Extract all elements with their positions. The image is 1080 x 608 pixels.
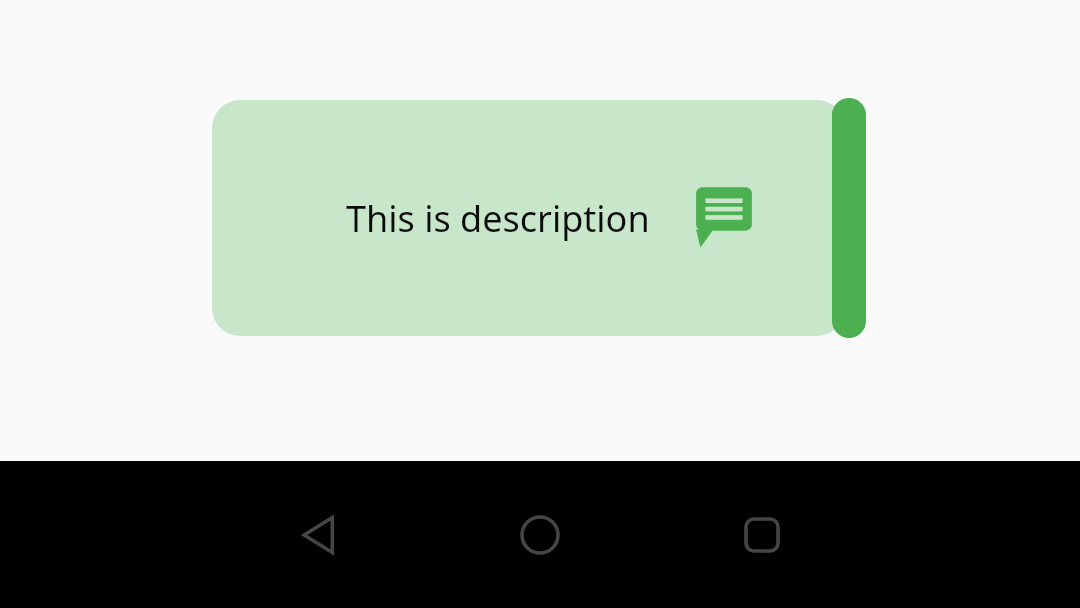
staticText: This is description bbox=[346, 194, 650, 243]
button[interactable]: Messages bbox=[693, 186, 755, 248]
button[interactable]: Home bbox=[492, 487, 588, 583]
button[interactable]: Recent apps bbox=[714, 487, 810, 583]
button[interactable]: Back bbox=[272, 487, 368, 583]
button[interactable] bbox=[832, 98, 866, 338]
button[interactable]: This is description bbox=[212, 100, 845, 336]
